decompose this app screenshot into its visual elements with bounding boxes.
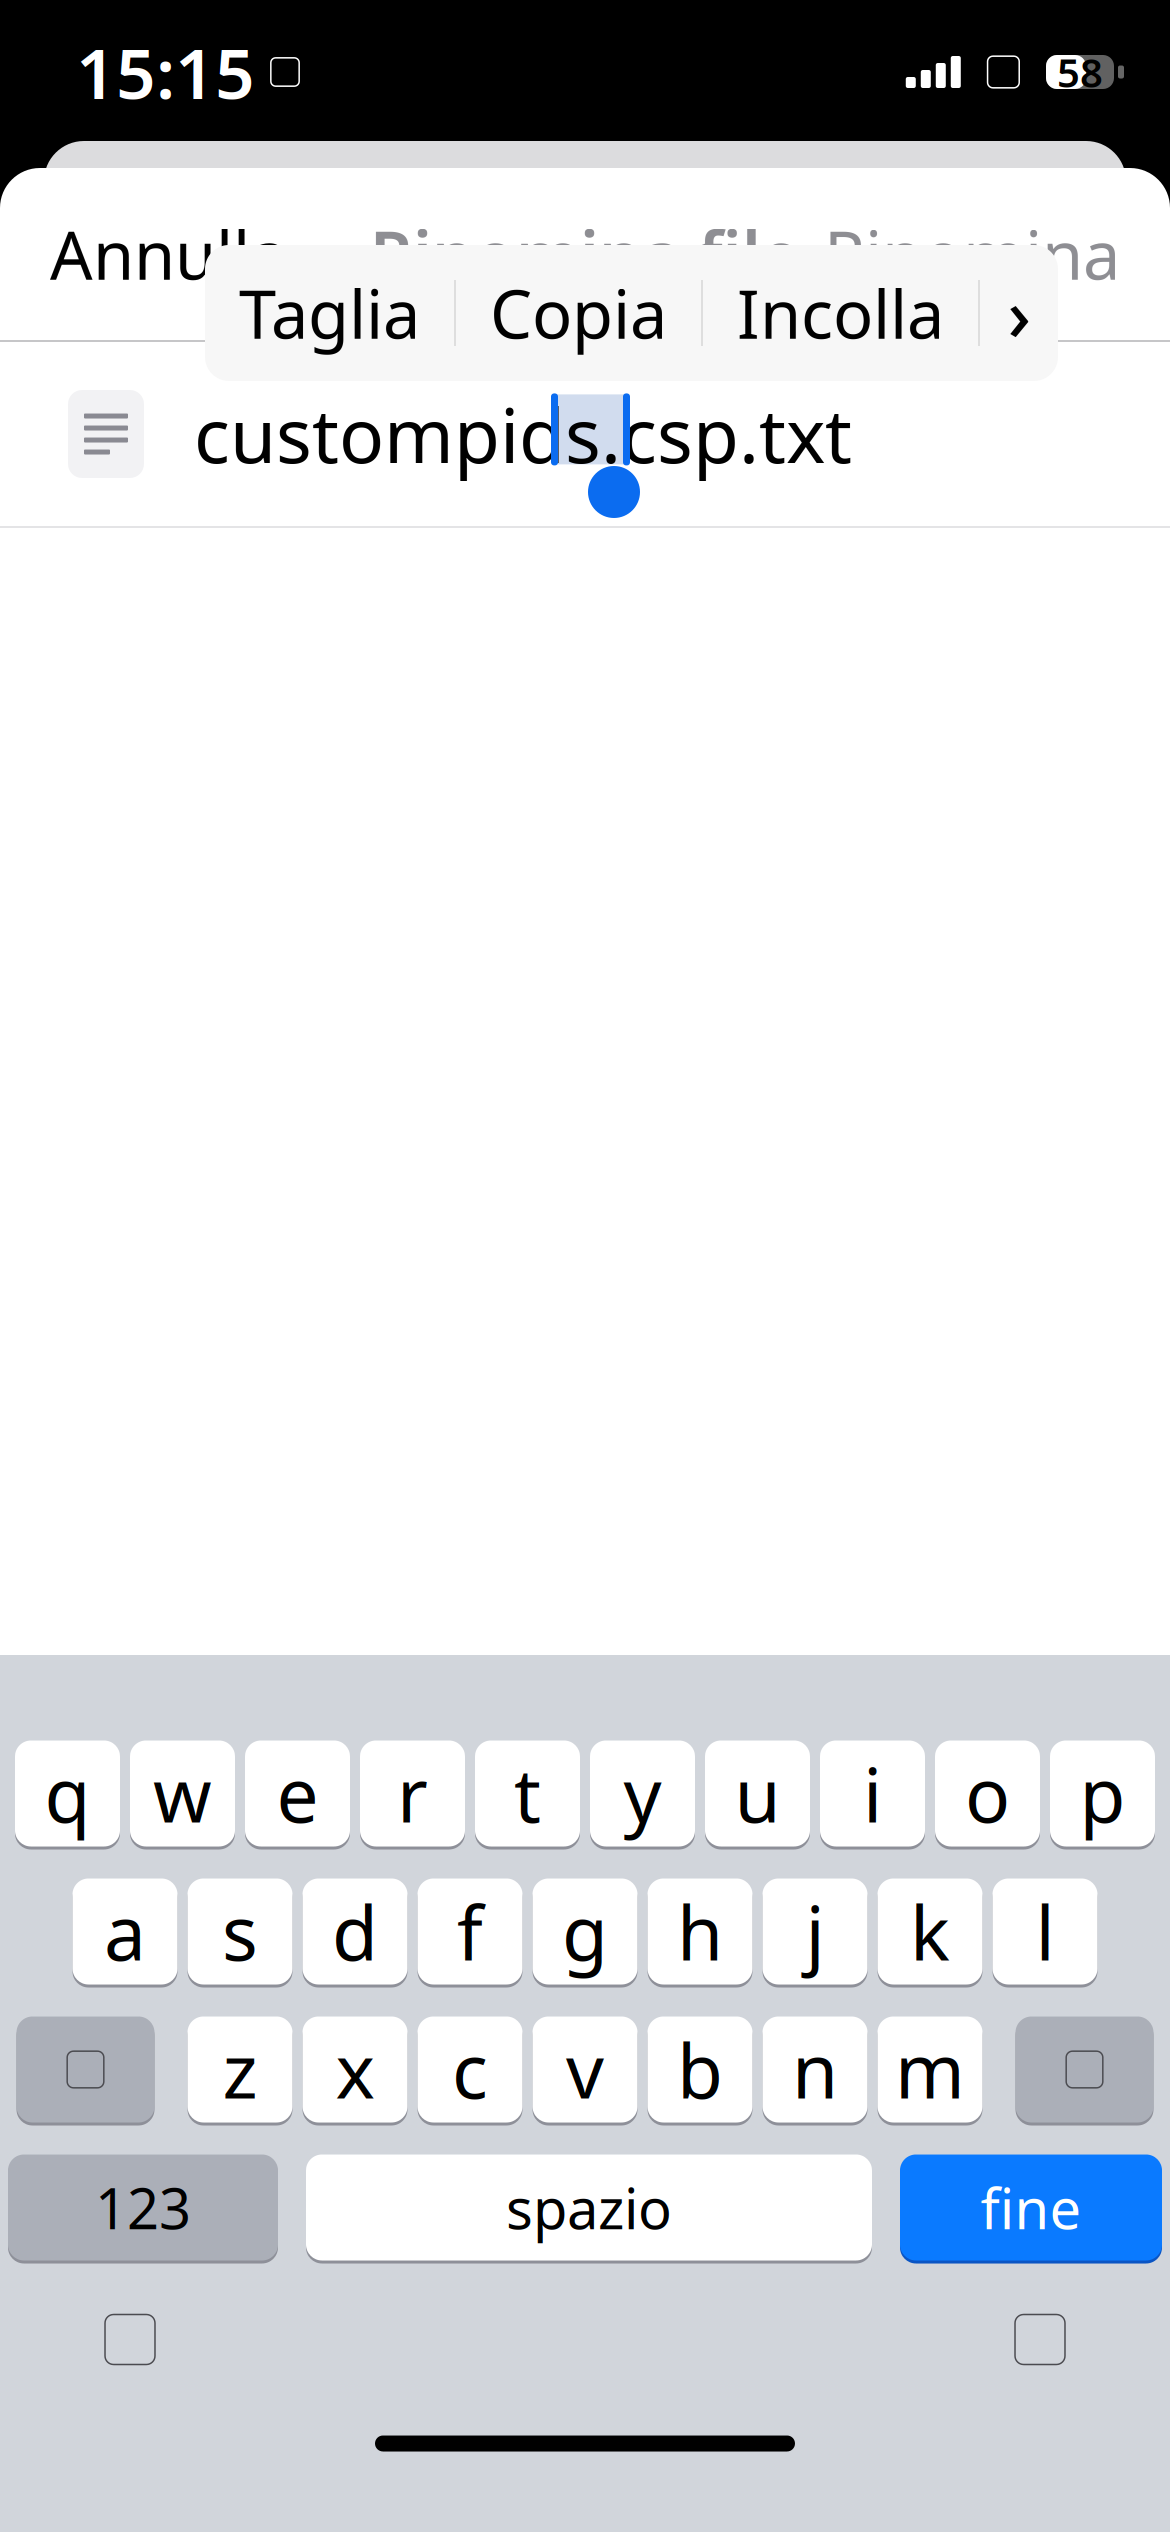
button[interactable]: More actions	[980, 245, 1058, 381]
button[interactable]: Taglia	[205, 245, 454, 381]
staticText: q	[44, 1744, 90, 1843]
staticText: t	[514, 1744, 541, 1843]
staticText: u	[734, 1744, 780, 1843]
staticText: Rinomina	[824, 210, 1120, 298]
staticText: w	[153, 1744, 212, 1843]
staticText: 123	[95, 2170, 191, 2245]
button[interactable]: Shift	[16, 2013, 154, 2125]
staticText: y	[623, 1744, 661, 1843]
button[interactable]: spazio	[306, 2151, 872, 2263]
button[interactable]: v	[532, 2013, 637, 2125]
staticText: e	[276, 1744, 318, 1843]
button[interactable]: Incolla	[703, 245, 978, 381]
button[interactable]: q	[15, 1737, 120, 1849]
button[interactable]: Dictation	[998, 2297, 1082, 2381]
staticText: f	[457, 1882, 483, 1981]
staticText: spazio	[506, 2170, 672, 2245]
button[interactable]: s	[187, 1875, 292, 1987]
button[interactable]: Annulla	[36, 194, 301, 314]
button[interactable]: a	[72, 1875, 177, 1987]
staticText: z	[222, 2020, 257, 2119]
staticText: x	[335, 2020, 374, 2119]
button[interactable]: u	[705, 1737, 810, 1849]
button[interactable]: h	[647, 1875, 752, 1987]
staticText: ›	[1007, 265, 1030, 361]
button[interactable]: e	[245, 1737, 350, 1849]
staticText: j	[805, 1882, 824, 1981]
staticText: Taglia	[239, 269, 420, 357]
button[interactable]: l	[992, 1875, 1097, 1987]
staticText: g	[562, 1882, 608, 1981]
button[interactable]: k	[877, 1875, 982, 1987]
staticText: p	[1079, 1744, 1125, 1843]
button[interactable]: n	[762, 2013, 867, 2125]
staticText: 15:15	[76, 26, 255, 118]
staticText: l	[1035, 1882, 1054, 1981]
staticText: r	[397, 1744, 428, 1843]
button[interactable]: Delete	[1015, 2013, 1153, 2125]
button[interactable]: g	[532, 1875, 637, 1987]
button[interactable]: o	[935, 1737, 1040, 1849]
staticText: fine	[980, 2170, 1081, 2245]
staticText: custompids.csp.txt	[194, 384, 852, 484]
button[interactable]: m	[877, 2013, 982, 2125]
button[interactable]: p	[1050, 1737, 1155, 1849]
button[interactable]: x	[302, 2013, 407, 2125]
staticText: m	[895, 2020, 965, 2119]
staticText: b	[677, 2020, 723, 2119]
staticText: v	[566, 2020, 604, 2119]
button[interactable]: w	[130, 1737, 235, 1849]
button[interactable]: Copia	[456, 245, 701, 381]
button[interactable]: y	[590, 1737, 695, 1849]
button[interactable]: 123	[8, 2151, 278, 2263]
button[interactable]: i	[820, 1737, 925, 1849]
staticText: Incolla	[737, 269, 944, 357]
button[interactable]: t	[475, 1737, 580, 1849]
staticText: Rinomina file	[370, 210, 800, 298]
button[interactable]: f	[417, 1875, 522, 1987]
button[interactable]: b	[647, 2013, 752, 2125]
staticText: i	[863, 1744, 882, 1843]
staticText: 58	[1057, 45, 1103, 98]
staticText: h	[677, 1882, 723, 1981]
staticText: c	[452, 2020, 488, 2119]
staticText: n	[792, 2020, 838, 2119]
staticText: k	[910, 1882, 950, 1981]
button[interactable]: Rinomina	[810, 194, 1134, 314]
staticText: Annulla	[50, 210, 287, 298]
staticText: s	[222, 1882, 258, 1981]
button[interactable]: j	[762, 1875, 867, 1987]
button[interactable]: fine	[900, 2151, 1162, 2263]
staticText: d	[332, 1882, 378, 1981]
staticText: a	[104, 1882, 146, 1981]
button[interactable]: c	[417, 2013, 522, 2125]
button[interactable]: d	[302, 1875, 407, 1987]
button[interactable]: r	[360, 1737, 465, 1849]
button[interactable]: z	[187, 2013, 292, 2125]
button[interactable]: Emoji keyboard	[88, 2297, 172, 2381]
staticText: Copia	[490, 269, 667, 357]
staticText: o	[965, 1744, 1010, 1843]
